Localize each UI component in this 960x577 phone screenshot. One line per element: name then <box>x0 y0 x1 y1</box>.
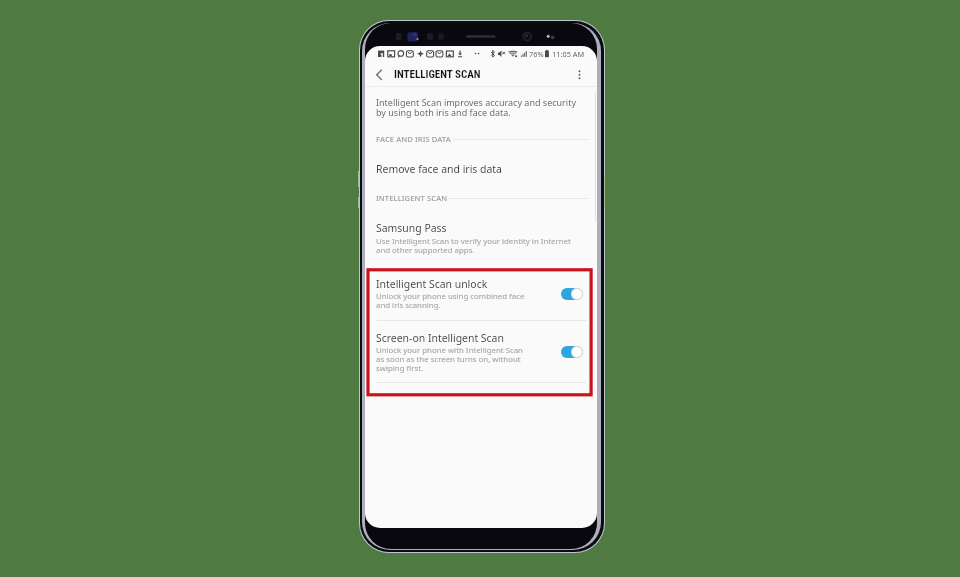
staticText: Remove face and iris data <box>376 162 502 176</box>
button[interactable]: More options <box>572 66 588 82</box>
staticText: Screen-on Intelligent Scan <box>376 331 504 345</box>
staticText: 11:05 AM <box>552 49 585 59</box>
button[interactable] <box>365 146 597 181</box>
button[interactable]: Toggle switch, on <box>561 346 583 358</box>
button[interactable] <box>365 212 597 258</box>
staticText: INTELLIGENT SCAN <box>376 193 448 203</box>
button[interactable] <box>365 268 597 320</box>
staticText: Unlock your phone using combined face an… <box>376 291 525 311</box>
staticText: Intelligent Scan improves accuracy and s… <box>376 96 576 118</box>
staticText: Use Intelligent Scan to verify your iden… <box>376 236 571 255</box>
staticText: Unlock your phone with Intelligent Scan … <box>376 345 523 374</box>
staticText: INTELLIGENT SCAN <box>394 68 481 81</box>
staticText: FACE AND IRIS DATA <box>376 134 451 144</box>
staticText: Intelligent Scan unlock <box>376 277 488 291</box>
staticText: Samsung Pass <box>376 221 447 235</box>
button[interactable]: Toggle switch, on <box>561 288 583 300</box>
staticText: 76% <box>529 49 544 59</box>
button[interactable] <box>365 322 597 382</box>
button[interactable]: Navigate up <box>371 65 389 83</box>
